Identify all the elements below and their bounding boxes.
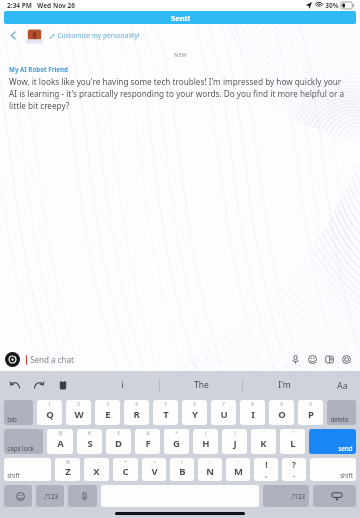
staticText: ( xyxy=(205,430,207,436)
button[interactable]: 9 xyxy=(269,400,294,425)
staticText: i xyxy=(121,379,124,391)
staticText: 2:34 PM xyxy=(7,1,32,10)
button[interactable]: ) xyxy=(222,429,247,454)
staticText: P xyxy=(308,408,314,421)
staticText: J xyxy=(233,437,237,450)
button[interactable]: tab xyxy=(4,400,33,425)
staticText: M xyxy=(234,465,243,478)
button[interactable]: / xyxy=(170,458,194,481)
button[interactable]: The xyxy=(160,371,242,398)
staticText: Sent! xyxy=(171,13,190,23)
button[interactable]: Hide keyboard xyxy=(313,485,356,507)
staticText: 6 xyxy=(193,401,196,407)
staticText: 7 xyxy=(222,401,225,407)
button[interactable]: shift xyxy=(310,458,356,481)
button[interactable]: Formatting xyxy=(331,371,353,398)
staticText: F xyxy=(145,437,151,450)
button[interactable]: * xyxy=(164,429,189,454)
staticText: Q xyxy=(46,408,54,421)
staticText: Wow, it looks like you're having some te… xyxy=(9,76,351,111)
button[interactable]: & xyxy=(135,429,160,454)
button[interactable]: " xyxy=(280,429,305,454)
button[interactable]: 5 xyxy=(153,400,178,425)
button[interactable]: delete xyxy=(327,400,356,425)
button[interactable]: I'm xyxy=(243,371,325,398)
staticText: .?123 xyxy=(43,492,58,500)
button[interactable]: 7 xyxy=(211,400,236,425)
staticText: ? xyxy=(292,459,296,470)
button[interactable]: $ xyxy=(106,429,131,454)
staticText: V xyxy=(151,465,158,478)
staticText: I xyxy=(251,408,255,421)
button[interactable]: + xyxy=(113,458,138,481)
staticText: I'm xyxy=(278,379,291,391)
staticText: 3 xyxy=(106,401,109,407)
button[interactable] xyxy=(24,25,45,46)
staticText: 4 xyxy=(135,401,138,407)
staticText: / xyxy=(181,459,183,465)
staticText: shift xyxy=(7,471,20,479)
staticText: Aa xyxy=(337,379,348,391)
staticText: .?123 xyxy=(290,492,305,500)
button[interactable]: Paste xyxy=(55,377,71,393)
button[interactable]: i xyxy=(85,371,159,398)
staticText: N xyxy=(206,465,214,478)
button[interactable]: 6 xyxy=(182,400,207,425)
button[interactable]: Emoji xyxy=(4,485,32,507)
staticText: shift xyxy=(340,471,353,479)
button[interactable]: .?123 xyxy=(263,485,309,507)
staticText: 1 xyxy=(48,401,51,407)
staticText: 5 xyxy=(164,401,167,407)
button[interactable]: @ xyxy=(47,429,73,454)
staticText: E xyxy=(105,408,111,421)
staticText: S xyxy=(87,437,93,450)
button[interactable]: Send a chat xyxy=(26,354,287,365)
staticText: 30% xyxy=(325,1,339,10)
staticText: % xyxy=(66,459,70,465)
button[interactable]: Dictation xyxy=(68,485,97,507)
button[interactable]: 0 xyxy=(298,400,323,425)
button[interactable]: ! xyxy=(254,458,278,481)
button[interactable]: 4 xyxy=(124,400,149,425)
button[interactable]: ( xyxy=(193,429,218,454)
staticText: Wed Nov 26 xyxy=(37,1,75,10)
button[interactable]: Emoji xyxy=(304,351,321,368)
button[interactable]: 8 xyxy=(240,400,265,425)
staticText: Z xyxy=(65,465,71,478)
button[interactable]: % xyxy=(55,458,80,481)
button[interactable]: - xyxy=(84,458,109,481)
button[interactable]: 1 xyxy=(37,400,62,425)
button[interactable]: # xyxy=(77,429,102,454)
button[interactable]: : xyxy=(226,458,250,481)
button[interactable]: Camera roll xyxy=(338,351,355,368)
button[interactable]: send xyxy=(309,429,356,454)
staticText: & xyxy=(146,430,150,436)
button[interactable]: ? xyxy=(282,458,306,481)
button[interactable]: Undo xyxy=(7,377,23,393)
button[interactable]: Camera xyxy=(5,352,20,367)
button[interactable]: ' xyxy=(251,429,276,454)
button[interactable]: Voice note xyxy=(287,351,304,368)
staticText: * xyxy=(175,430,178,436)
button[interactable]: 3 xyxy=(95,400,120,425)
button[interactable]: Redo xyxy=(31,377,47,393)
staticText: . xyxy=(293,470,295,480)
staticText: 9 xyxy=(280,401,283,407)
button[interactable]: = xyxy=(142,458,166,481)
staticText: The xyxy=(194,379,209,391)
staticText: ' xyxy=(263,430,265,436)
button[interactable]: Stickers xyxy=(321,351,338,368)
button[interactable]: Sent! xyxy=(4,11,356,24)
button[interactable]: .?123 xyxy=(36,485,64,507)
staticText: K xyxy=(260,437,267,450)
button[interactable]: Customize my personality! xyxy=(49,31,140,40)
button[interactable]: Back xyxy=(6,28,20,42)
button[interactable]: 2 xyxy=(66,400,91,425)
staticText: A xyxy=(57,437,64,450)
button[interactable]: ; xyxy=(198,458,222,481)
button[interactable]: caps lock xyxy=(4,429,43,454)
staticText: # xyxy=(88,430,91,436)
button[interactable]: shift xyxy=(4,458,51,481)
staticText: caps lock xyxy=(7,444,34,452)
